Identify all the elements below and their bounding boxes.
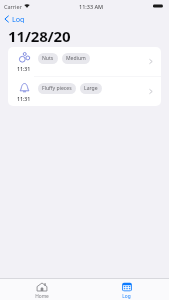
staticText: Carrier (4, 3, 22, 10)
staticText: Large (84, 85, 98, 92)
staticText: Fluffy pieces (42, 85, 72, 92)
staticText: Medium (66, 55, 86, 62)
staticText: 11:31 (17, 95, 31, 102)
staticText: Nuts (42, 55, 54, 62)
button[interactable]: Home (0, 282, 84, 300)
button[interactable]: Back to Log (0, 12, 31, 25)
staticText: Log (12, 14, 25, 23)
button[interactable]: 11:31 Fluffy pieces, Large (8, 77, 161, 106)
staticText: 11:33 AM (79, 3, 104, 10)
staticText: 11:31 (17, 65, 31, 72)
staticText: 11/28/20 (8, 26, 71, 46)
staticText: Home (35, 293, 49, 300)
button[interactable]: Log (84, 282, 169, 300)
button[interactable]: 11:31 Nuts, Medium (8, 47, 161, 76)
staticText: Log (122, 293, 131, 300)
